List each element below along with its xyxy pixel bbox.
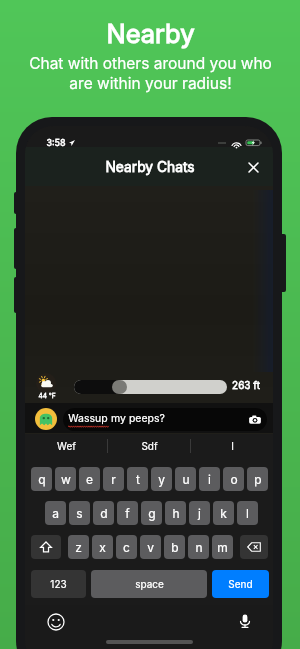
staticText: x [99, 540, 106, 555]
staticText: Nearby [106, 18, 195, 49]
button[interactable]: Wassup [63, 408, 267, 431]
staticText: Sdf [141, 440, 158, 452]
staticText: i [208, 472, 211, 487]
button[interactable]: v [140, 535, 161, 559]
staticText: p [254, 472, 262, 487]
staticText: Send [228, 578, 253, 590]
button[interactable]: i [199, 467, 220, 491]
staticText: I [231, 440, 234, 452]
button[interactable]: Camera [248, 413, 262, 427]
button[interactable]: u [175, 467, 196, 491]
staticText: z [75, 540, 82, 555]
button[interactable]: 123 [31, 570, 86, 598]
button[interactable]: Emoji [48, 614, 64, 630]
button[interactable]: h [165, 501, 186, 525]
staticText: d [100, 506, 108, 521]
button[interactable]: g [141, 501, 162, 525]
button[interactable]: c [116, 535, 137, 559]
button[interactable]: Weather [36, 373, 56, 393]
button[interactable]: r [103, 467, 124, 491]
button[interactable]: e [79, 467, 100, 491]
staticText: n [195, 540, 203, 555]
staticText: Chat with others around you who [29, 54, 272, 73]
button[interactable]: o [223, 467, 244, 491]
staticText: t [136, 472, 140, 487]
button[interactable]: z [68, 535, 89, 559]
staticText: 263 ft [232, 379, 260, 391]
staticText: l [246, 506, 249, 521]
staticText: space [135, 578, 164, 590]
button[interactable]: Send [212, 570, 269, 598]
staticText: v [147, 540, 154, 555]
staticText: are within your radius! [69, 74, 232, 93]
button[interactable]: Profile avatar [35, 408, 57, 430]
staticText: q [38, 472, 46, 487]
staticText: m [217, 540, 228, 555]
staticText: 44 °F [38, 392, 56, 400]
staticText: Wassup [68, 412, 108, 425]
button[interactable]: a [45, 501, 66, 525]
staticText: u [182, 472, 190, 487]
staticText: h [172, 506, 180, 521]
button[interactable]: b [164, 535, 185, 559]
button[interactable]: y [151, 467, 172, 491]
button[interactable]: p [247, 467, 268, 491]
button[interactable]: Sdf [108, 434, 190, 458]
button[interactable]: d [93, 501, 114, 525]
staticText: r [111, 472, 116, 487]
staticText: o [230, 472, 238, 487]
staticText: f [125, 506, 130, 521]
staticText: c [123, 540, 130, 555]
button[interactable] [74, 380, 227, 394]
staticText: my peeps? [108, 412, 165, 425]
staticText: 123 [50, 578, 67, 590]
staticText: j [198, 506, 201, 521]
button[interactable]: s [69, 501, 90, 525]
staticText: y [158, 472, 165, 487]
staticText: b [171, 540, 179, 555]
button[interactable]: k [213, 501, 234, 525]
button[interactable]: n [188, 535, 209, 559]
staticText: s [76, 506, 83, 521]
button[interactable]: Close [244, 158, 263, 177]
button[interactable]: t [127, 467, 148, 491]
button[interactable]: space [91, 570, 207, 598]
button[interactable]: I [191, 434, 273, 458]
button[interactable]: q [31, 467, 52, 491]
button[interactable]: f [117, 501, 138, 525]
button[interactable]: l [237, 501, 258, 525]
button[interactable]: Shift [31, 535, 61, 559]
staticText: 3:58 [46, 137, 66, 148]
staticText: k [220, 506, 227, 521]
button[interactable]: w [55, 467, 76, 491]
button[interactable]: j [189, 501, 210, 525]
button[interactable]: Backspace [240, 535, 268, 559]
button[interactable]: m [212, 535, 233, 559]
staticText: a [52, 506, 59, 521]
staticText: e [86, 472, 93, 487]
staticText: Wef [57, 440, 76, 452]
staticText: Nearby Chats [105, 159, 195, 176]
staticText: g [148, 506, 156, 521]
button[interactable]: x [92, 535, 113, 559]
button[interactable]: Dictation [237, 613, 253, 629]
button[interactable]: Wef [25, 434, 107, 458]
staticText: w [61, 472, 71, 487]
